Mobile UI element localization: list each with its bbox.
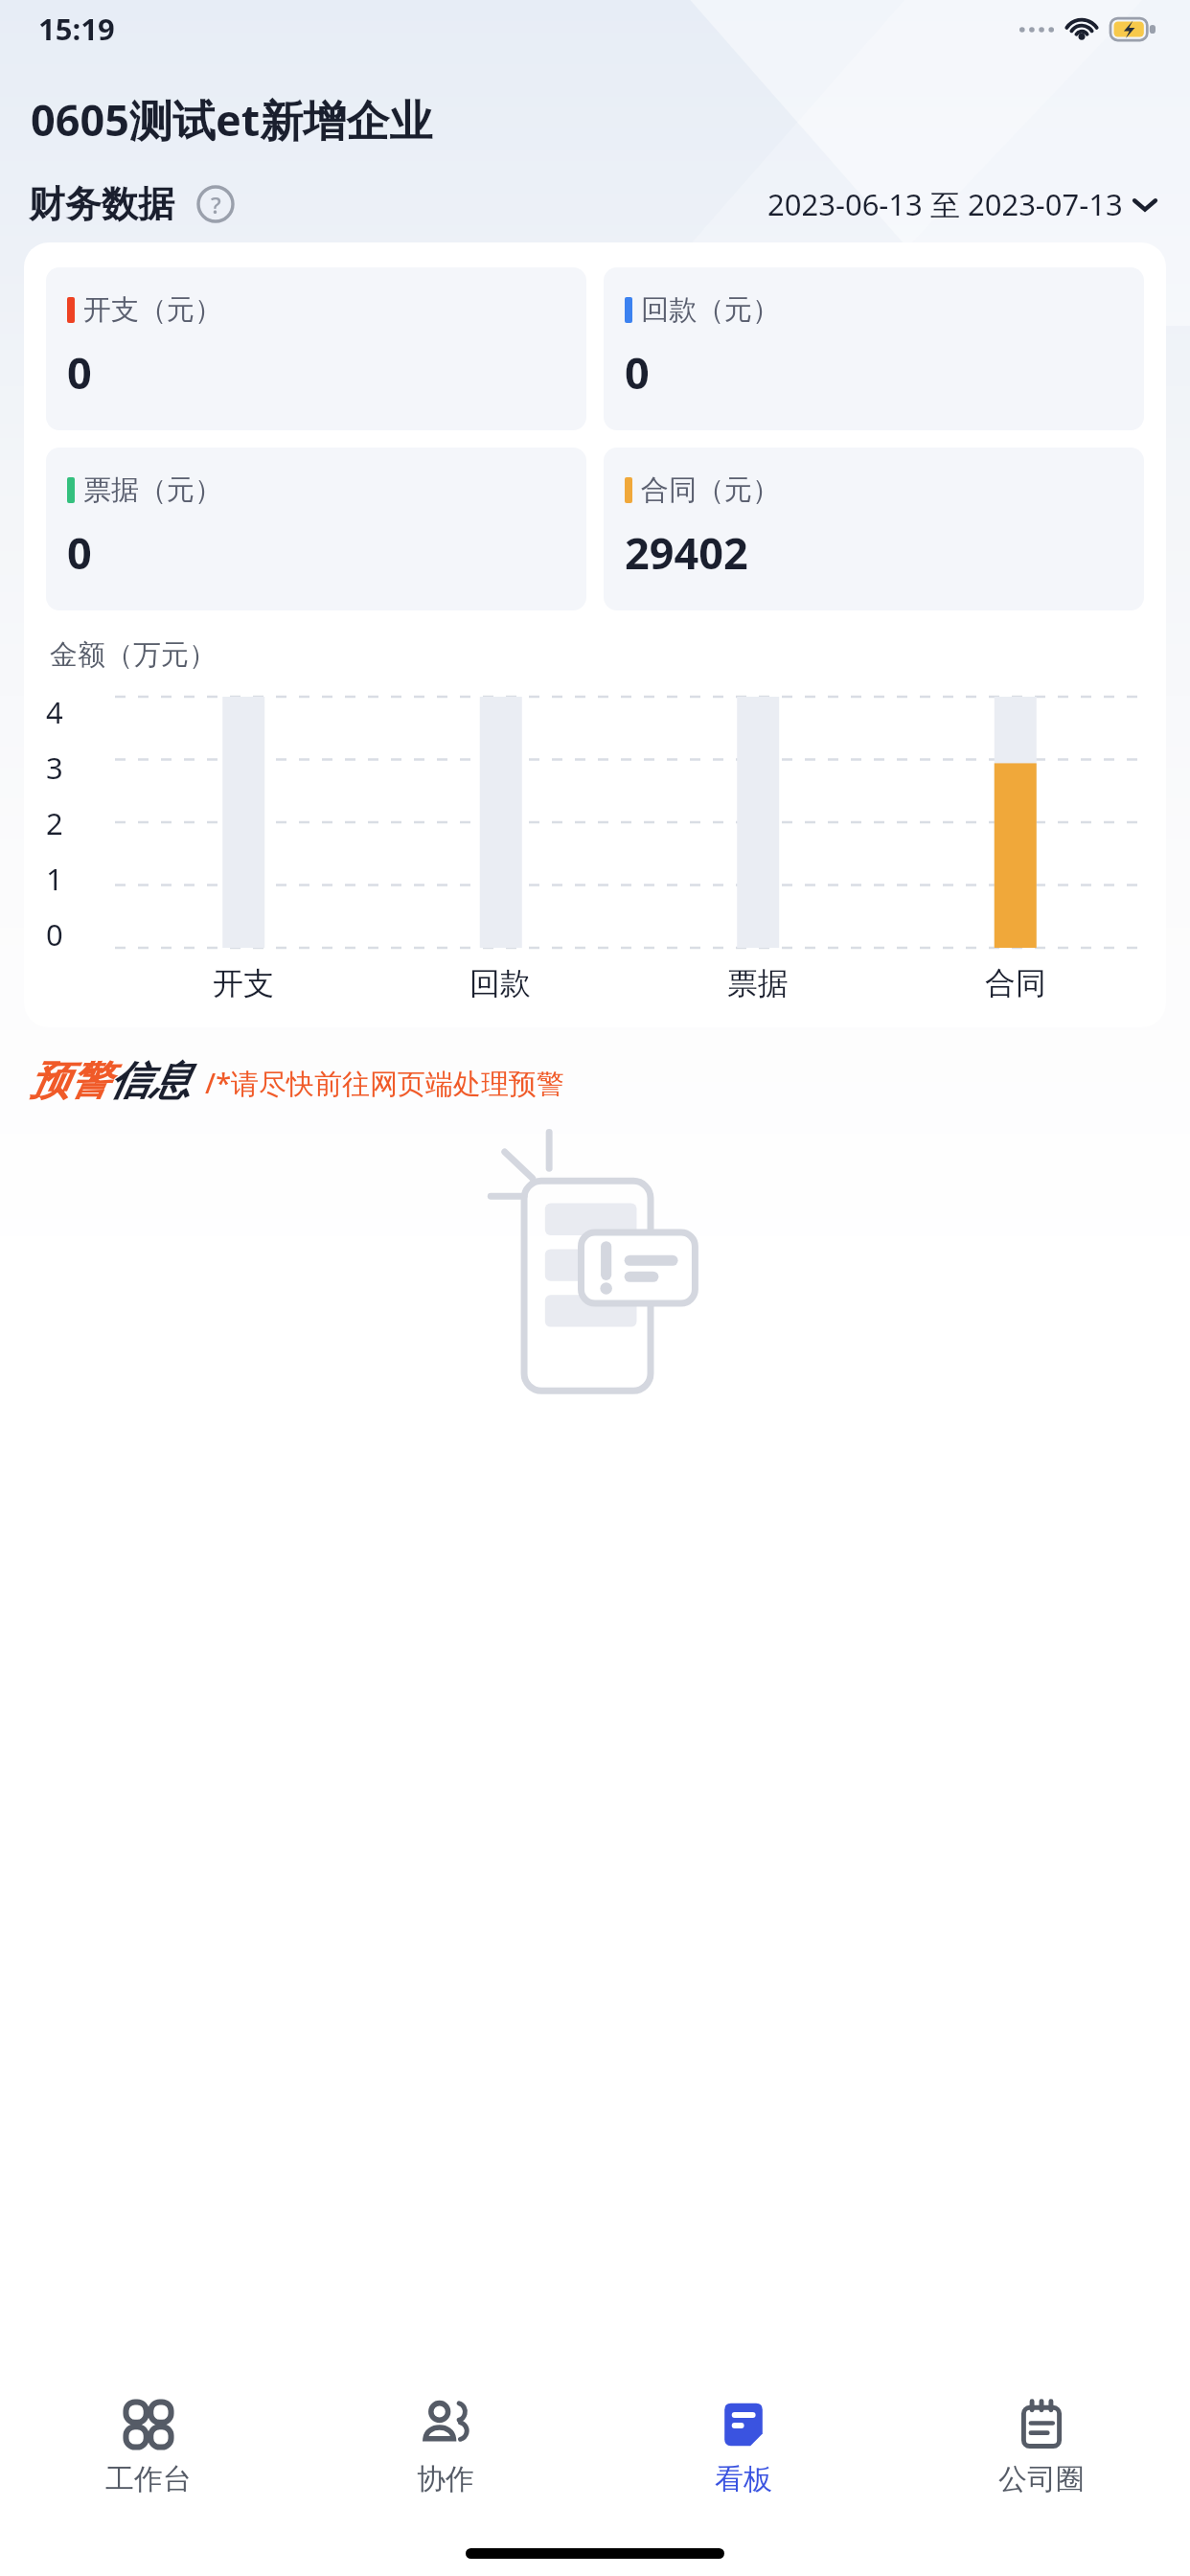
staticText: 开支（元） [83,292,222,328]
staticText: 29402 [625,523,748,582]
button[interactable]: 票据（元） [46,448,586,610]
button[interactable]: 2023-06-13 至 2023-07-13 [767,184,1157,224]
staticText: 信息 [109,1056,190,1107]
staticText: 财务数据 [29,181,174,227]
button[interactable]: 工作台 [0,2377,297,2497]
button[interactable]: 帮助 [195,184,236,224]
staticText: 0 [46,914,63,953]
staticText: 金额（万元） [50,637,217,673]
staticText: 15:19 [38,9,115,49]
staticText: 0 [625,343,650,402]
staticText: 合同 [985,964,1046,1002]
staticText: ? [211,189,221,220]
staticText: 2 [46,803,63,841]
button[interactable]: 开支（元） [46,267,586,430]
button[interactable]: 协作 [297,2377,594,2497]
staticText: 票据 [727,964,789,1002]
staticText: 回款（元） [641,292,780,328]
staticText: 工作台 [105,2461,192,2497]
staticText: 票据（元） [83,472,222,508]
staticText: 0605测试et新增企业 [31,90,433,149]
staticText: 协作 [417,2461,474,2497]
staticText: /*请尽快前往网页端处理预警 [205,1064,565,1102]
staticText: 1 [46,859,63,897]
button[interactable]: 回款（元） [604,267,1144,430]
button[interactable]: 看板 [594,2377,892,2497]
staticText: 4 [46,692,63,730]
button[interactable]: 合同（元） [604,448,1144,610]
staticText: 公司圈 [998,2461,1085,2497]
staticText: 回款 [469,964,531,1002]
staticText: 看板 [715,2461,772,2497]
staticText: 合同（元） [641,472,780,508]
staticText: 2023-06-13 至 2023-07-13 [767,184,1123,224]
staticText: 0 [67,523,92,582]
staticText: 3 [46,747,63,786]
button[interactable]: 公司圈 [892,2377,1190,2497]
staticText: 开支 [213,964,274,1002]
staticText: 0 [67,343,92,402]
staticText: 预警 [29,1056,109,1107]
